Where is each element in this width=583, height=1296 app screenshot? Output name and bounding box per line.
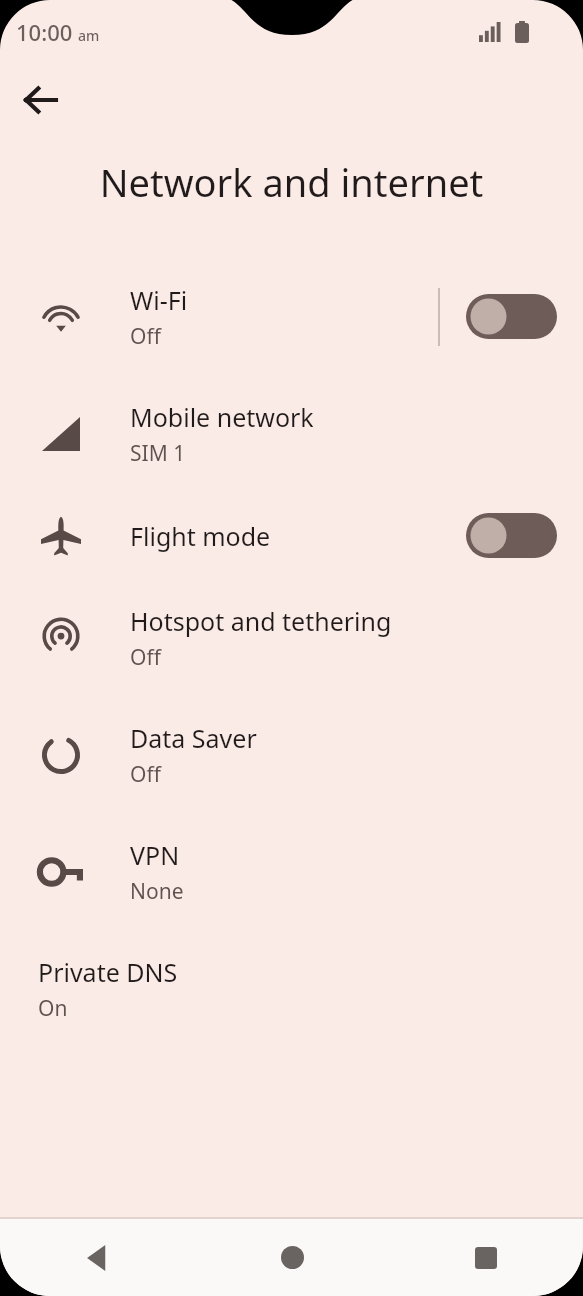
staticText: VPN — [130, 838, 180, 872]
button[interactable]: Wi-Fi — [0, 258, 583, 375]
button[interactable]: VPN — [0, 813, 583, 930]
button[interactable]: Back — [12, 71, 70, 129]
staticText: Data Saver — [130, 721, 257, 755]
staticText: None — [130, 877, 184, 906]
staticText: On — [38, 994, 68, 1023]
button[interactable]: Hotspot and tethering — [0, 579, 583, 696]
staticText: Off — [130, 760, 161, 789]
button[interactable]: Flight mode toggle — [466, 513, 557, 558]
staticText: Private DNS — [38, 955, 178, 989]
staticText: Mobile network — [130, 400, 314, 434]
button[interactable]: Back — [0, 1219, 195, 1296]
button[interactable]: Recent apps — [389, 1219, 583, 1296]
staticText: Flight mode — [130, 519, 271, 553]
staticText: SIM 1 — [130, 439, 186, 468]
button[interactable]: Wi-Fi toggle — [466, 294, 557, 339]
staticText: Off — [130, 643, 161, 672]
staticText: Wi-Fi — [130, 283, 188, 317]
staticText: 10:00 — [16, 17, 73, 47]
staticText: am — [78, 26, 100, 45]
button[interactable]: Flight mode — [0, 492, 583, 579]
staticText: Network and internet — [24, 156, 559, 208]
staticText: Off — [130, 322, 161, 351]
button[interactable]: Home — [195, 1219, 389, 1296]
button[interactable]: Data Saver — [0, 696, 583, 813]
button[interactable]: Private DNS — [0, 930, 583, 1047]
staticText: Hotspot and tethering — [130, 604, 392, 638]
button[interactable]: Mobile network — [0, 375, 583, 492]
